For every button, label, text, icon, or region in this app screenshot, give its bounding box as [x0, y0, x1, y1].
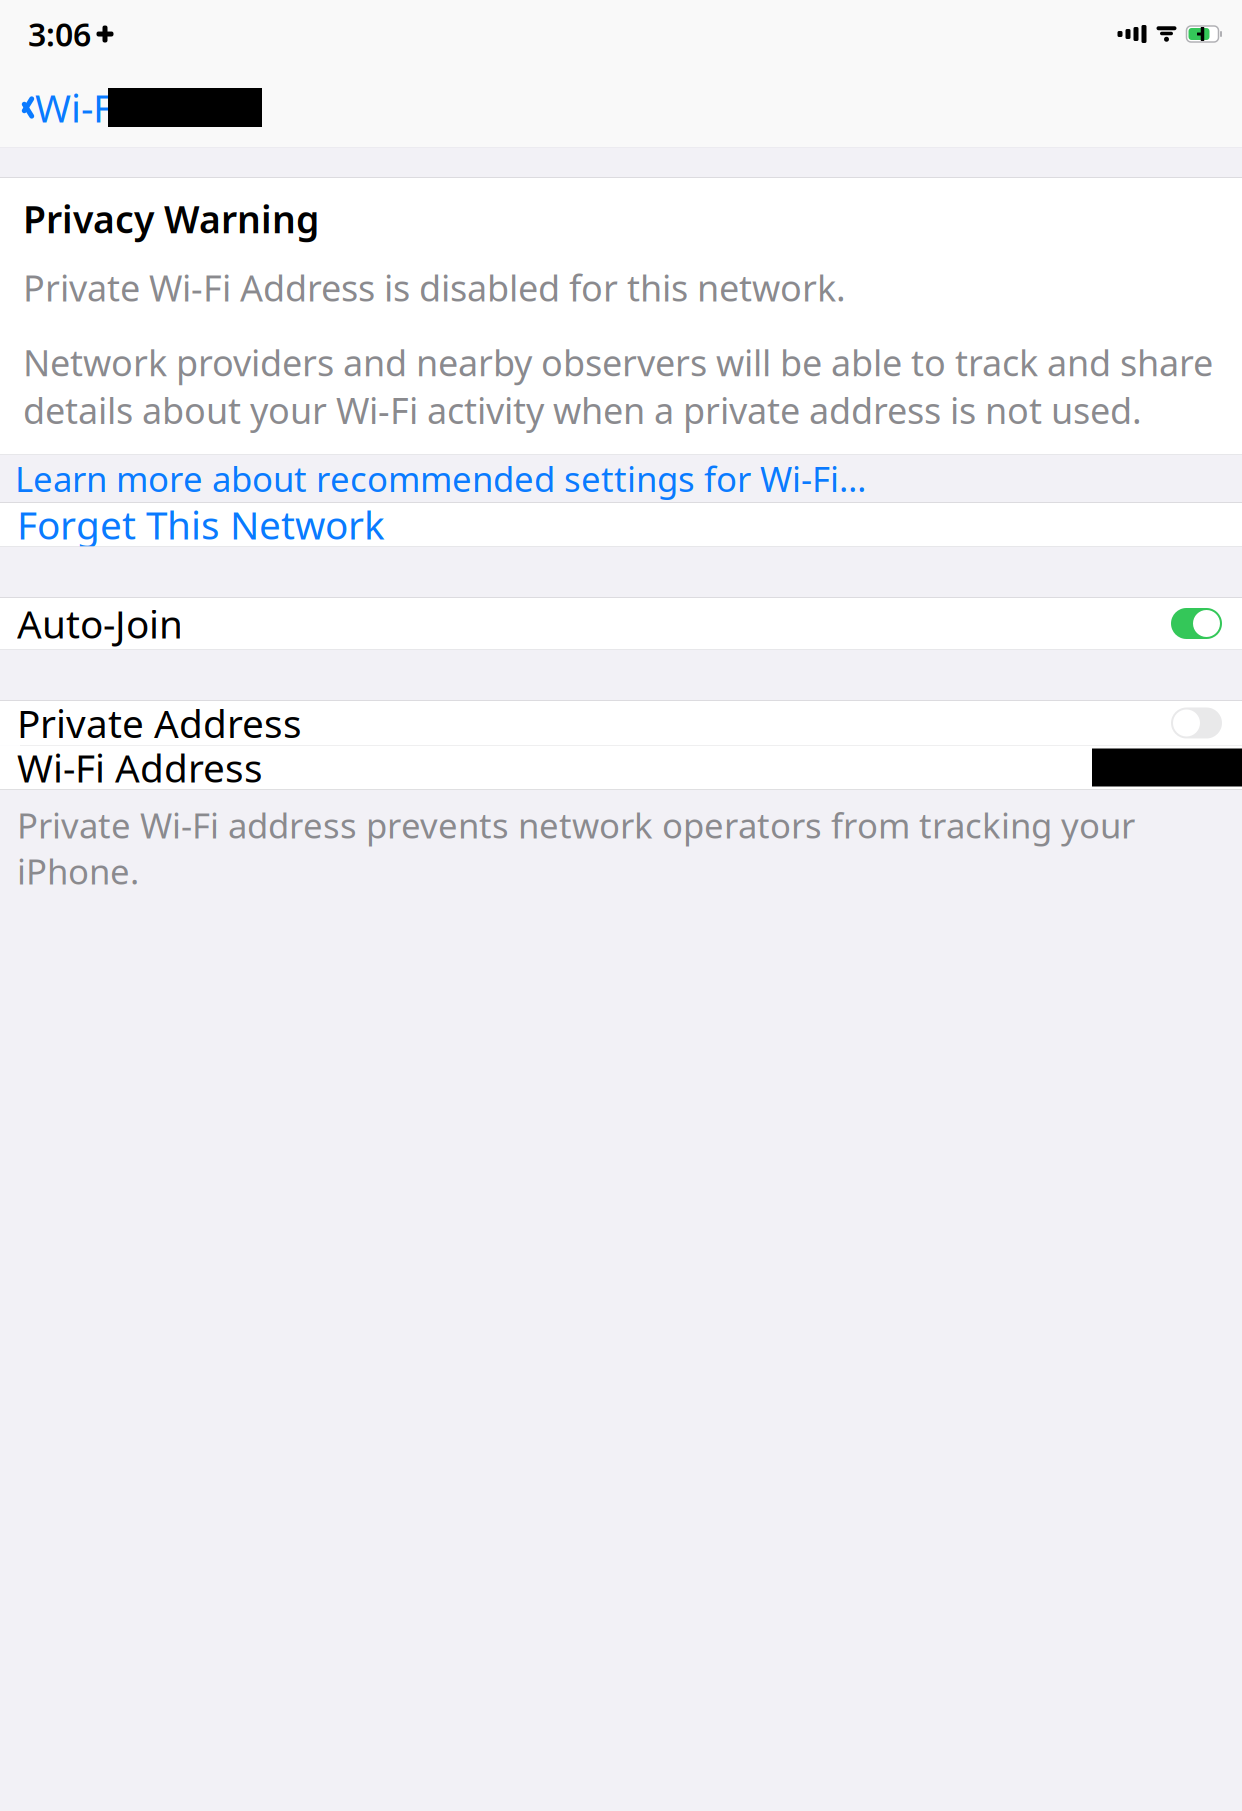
- button[interactable]: Forget This Network: [0, 503, 1242, 546]
- staticText: Private Wi-Fi Address is disabled for th…: [23, 264, 846, 311]
- button[interactable]: Auto-Join: [0, 598, 1242, 649]
- staticText: Private Wi-Fi address prevents network o…: [17, 802, 1135, 894]
- button[interactable]: Private Address: [0, 701, 1242, 745]
- staticText: Privacy Warning: [23, 194, 319, 244]
- staticText: Auto-Join: [17, 598, 183, 649]
- staticText: Wi-Fi: [35, 82, 123, 133]
- staticText: Private Address: [17, 697, 302, 749]
- staticText: Forget This Network: [17, 499, 385, 550]
- staticText: Network providers and nearby observers w…: [23, 338, 1213, 434]
- button[interactable]: Learn more about recommended settings fo…: [0, 454, 1242, 502]
- staticText: 3:06: [28, 13, 91, 55]
- staticText: Learn more about recommended settings fo…: [15, 455, 866, 501]
- staticText: Wi-Fi Address: [17, 742, 263, 793]
- button[interactable]: Wi-Fi: [0, 72, 123, 143]
